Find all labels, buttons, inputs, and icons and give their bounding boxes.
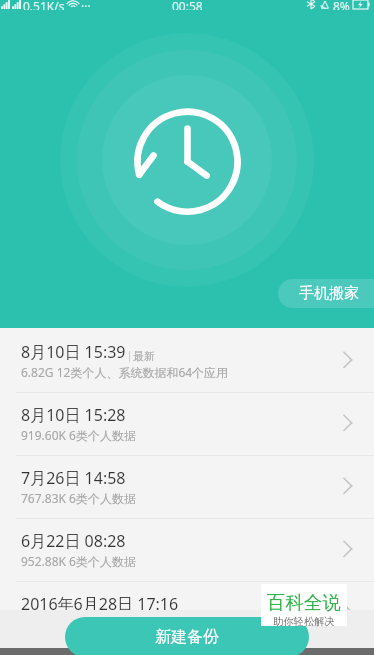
button[interactable]: 8月10日 15:28 (0, 393, 374, 455)
staticText: 8% (333, 0, 350, 10)
staticText: 919.60K 6类个人数据 (21, 427, 136, 443)
staticText: 最新 (133, 349, 155, 363)
staticText: ··· (81, 0, 91, 10)
button[interactable]: 6月22日 08:28 (0, 519, 374, 581)
staticText: 百科全说 (267, 591, 341, 614)
button[interactable]: 手机搬家 (278, 279, 374, 308)
staticText: 6.82G 12类个人、系统数据和64个应用 (21, 364, 229, 380)
staticText: 助你轻松解决 (273, 615, 335, 628)
staticText: 0.51K/s (23, 0, 65, 10)
staticText: 8月10日 15:39 (21, 341, 126, 363)
staticText: 手机搬家 (299, 284, 359, 303)
button[interactable]: 7月26日 14:58 (0, 456, 374, 518)
staticText: 1.20M 6类个人数据 (21, 616, 126, 632)
staticText: 767.83K 6类个人数据 (21, 490, 136, 506)
button[interactable]: 2016年6月28日 17:16 (0, 582, 374, 644)
staticText: 6月22日 08:28 (21, 530, 126, 552)
staticText: 新建备份 (155, 627, 219, 647)
staticText: 8月10日 15:28 (21, 404, 126, 426)
button[interactable]: 新建备份 (65, 617, 309, 655)
button[interactable]: 8月10日 15:39 (0, 330, 374, 392)
staticText: 952.88K 6类个人数据 (21, 553, 136, 569)
staticText: 2016年6月28日 17:16 (21, 593, 179, 615)
staticText: 7月26日 14:58 (21, 467, 126, 489)
staticText: 00:58 (172, 0, 203, 10)
